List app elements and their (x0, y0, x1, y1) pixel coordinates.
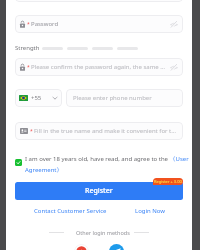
button[interactable]: Register (15, 182, 183, 200)
button[interactable]: Login Now (135, 207, 166, 215)
staticText: Fill in the true name and make it conven… (34, 127, 176, 135)
staticText: Register + 3.00 (154, 179, 182, 184)
staticText: Please enter phone number (73, 94, 152, 102)
staticText: Register (85, 186, 113, 196)
button[interactable]: Sign in with Google (74, 244, 89, 250)
staticText: * (27, 64, 30, 71)
button[interactable]: * (15, 15, 183, 33)
staticText: * (30, 128, 33, 135)
staticText: * (27, 21, 30, 28)
button[interactable]: Select country code (15, 89, 62, 107)
button[interactable]: I am over 18 years old, have read, and a… (15, 155, 195, 174)
staticText: I am over 18 years old, have read, and a… (25, 155, 195, 174)
button[interactable]: Sign in with Telegram (109, 244, 124, 250)
button[interactable]: * (15, 122, 183, 140)
staticText: +55 (31, 94, 42, 102)
button[interactable]: Please enter phone number (66, 89, 183, 107)
staticText: Please confirm the password again, the s… (31, 63, 168, 71)
staticText: Password (31, 20, 168, 28)
staticText: Other login methods (76, 229, 130, 236)
button[interactable]: * (15, 58, 183, 76)
staticText: Contact Customer Service (34, 207, 107, 215)
staticText: Login Now (135, 207, 166, 215)
staticText: Strength (15, 44, 40, 52)
button[interactable]: Contact Customer Service (34, 207, 107, 215)
